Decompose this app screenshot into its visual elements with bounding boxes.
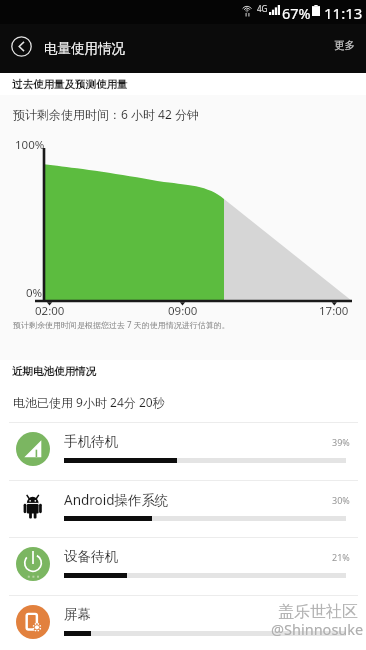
staticText: 电池已使用 9小时 24分 20秒 xyxy=(13,394,165,410)
staticText: 21% xyxy=(332,551,350,563)
button[interactable]: 更多 xyxy=(324,30,365,61)
staticText: 预计剩余使用时间是根据您过去 7 天的使用情况进行估算的。 xyxy=(13,319,230,330)
staticText: 近期电池使用情况 xyxy=(12,365,96,378)
button[interactable]: Back xyxy=(7,32,36,61)
staticText: 39% xyxy=(332,436,350,448)
button[interactable]: 手机待机 xyxy=(0,423,366,480)
staticText: 11:13 xyxy=(324,3,363,23)
staticText: 0% xyxy=(26,285,43,301)
staticText: 17:00 xyxy=(319,303,349,319)
button[interactable]: 设备待机 xyxy=(0,538,366,595)
staticText: 30% xyxy=(332,494,350,506)
button[interactable]: Android操作系统 xyxy=(0,481,366,537)
staticText: 09:00 xyxy=(168,303,198,319)
staticText: 02:00 xyxy=(35,303,65,319)
staticText: 电量使用情况 xyxy=(44,40,125,57)
staticText: 预计剩余使用时间：6 小时 42 分钟 xyxy=(13,106,199,122)
staticText: 设备待机 xyxy=(64,548,118,565)
staticText: 手机待机 xyxy=(64,433,118,450)
staticText: @Shinnosuke xyxy=(271,619,364,639)
staticText: 更多 xyxy=(334,39,355,52)
staticText: 盖乐世社区 xyxy=(278,602,358,622)
staticText: 过去使用量及预测使用量 xyxy=(12,78,128,91)
staticText: Android操作系统 xyxy=(64,491,169,509)
staticText: 100% xyxy=(15,137,45,153)
staticText: 4G xyxy=(257,3,268,14)
staticText: 屏幕 xyxy=(64,606,91,623)
staticText: 67% xyxy=(282,3,311,23)
button[interactable]: 屏幕 xyxy=(0,596,366,650)
